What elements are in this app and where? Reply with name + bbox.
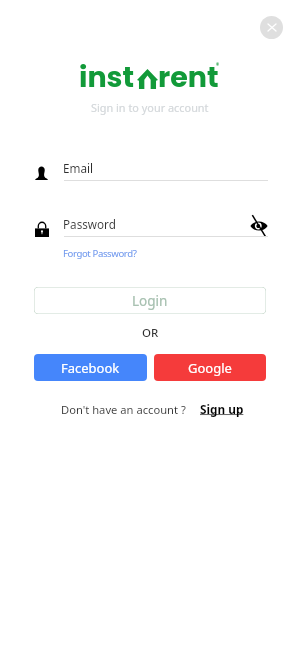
staticText: rent <box>158 57 219 97</box>
staticText: Email <box>63 160 94 176</box>
staticText: inst <box>79 57 135 97</box>
button[interactable]: Forgot Password? <box>63 247 137 260</box>
button[interactable]: Sign up <box>200 401 244 417</box>
staticText: OR <box>142 325 159 341</box>
staticText: Login <box>132 292 168 310</box>
staticText: Sign in to your account <box>91 100 209 115</box>
staticText: ® <box>216 62 220 70</box>
staticText: Don't have an account ? <box>61 402 186 417</box>
button[interactable]: Facebook <box>34 354 147 381</box>
staticText: Forgot Password? <box>63 247 137 260</box>
button[interactable]: Show password <box>250 216 268 236</box>
button[interactable]: Google <box>154 354 266 381</box>
staticText: Facebook <box>61 359 120 377</box>
button[interactable]: Login <box>34 287 266 314</box>
staticText: Password <box>63 216 116 232</box>
button[interactable]: Close <box>260 16 283 39</box>
staticText: Google <box>188 359 232 377</box>
